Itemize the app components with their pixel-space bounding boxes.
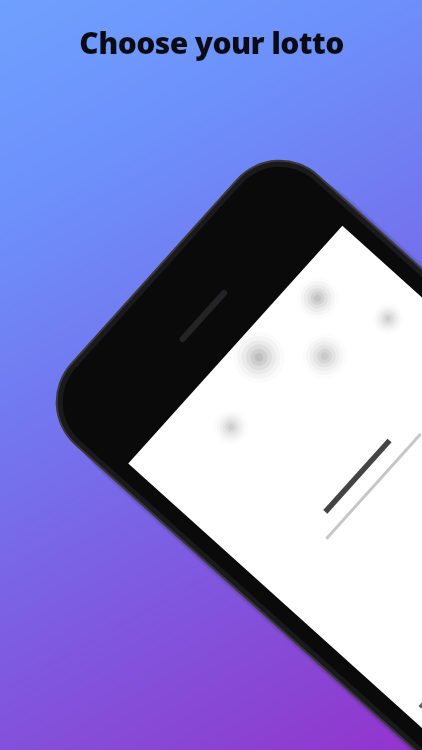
- button[interactable]: Choose your lotto: [79, 22, 344, 63]
- button[interactable]: Phone app preview: [0, 0, 422, 750]
